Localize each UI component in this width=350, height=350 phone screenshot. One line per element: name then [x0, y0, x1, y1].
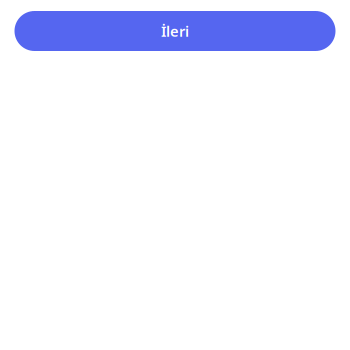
button[interactable]: İleri — [14, 11, 335, 51]
staticText: İleri — [161, 21, 189, 41]
